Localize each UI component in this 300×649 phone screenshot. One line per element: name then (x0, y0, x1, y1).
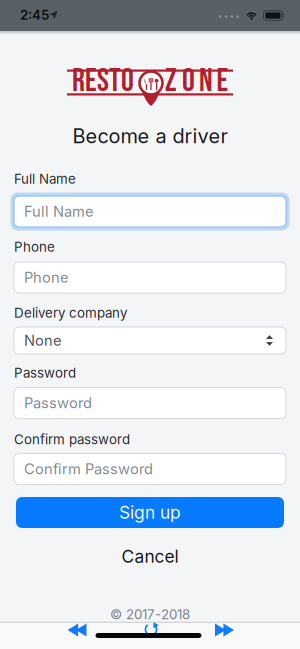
button[interactable]: Forward (207, 615, 242, 644)
staticText: Become a driver (72, 124, 227, 148)
button[interactable]: None (14, 327, 286, 354)
button[interactable]: Cancel (113, 542, 186, 571)
staticText: Cancel (121, 546, 178, 567)
staticText: Delivery company (14, 305, 127, 321)
staticText: None (24, 332, 62, 349)
staticText: RESTO (72, 62, 134, 101)
button[interactable]: Reload (136, 615, 165, 644)
staticText: Sign up (119, 502, 181, 523)
staticText: Phone (24, 269, 69, 286)
staticText: Confirm Password (24, 460, 153, 478)
staticText: N (199, 62, 213, 101)
staticText: Password (14, 365, 76, 381)
staticText: E (216, 62, 228, 101)
button[interactable]: Sign up (16, 497, 284, 528)
staticText: O (182, 62, 195, 101)
staticText: Z (165, 62, 177, 101)
staticText: © 2017-2018 (110, 607, 190, 622)
staticText: Phone (14, 239, 55, 255)
staticText: Confirm password (14, 432, 130, 447)
staticText: 2:45 (20, 7, 49, 23)
staticText: Full Name (14, 171, 76, 187)
staticText: Password (24, 394, 92, 412)
button[interactable]: Back (59, 615, 94, 644)
staticText: Full Name (24, 203, 94, 220)
